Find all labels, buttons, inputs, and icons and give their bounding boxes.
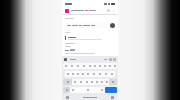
button[interactable]: Home [83,97,97,98]
button[interactable] [63,63,69,69]
button[interactable]: Symbols [63,87,70,93]
button[interactable] [85,71,91,77]
button[interactable] [80,71,85,77]
button[interactable] [112,63,117,69]
button[interactable] [107,63,112,69]
button[interactable] [103,71,109,77]
button[interactable] [109,71,115,77]
button[interactable] [92,63,97,69]
button[interactable]: Enter [105,87,117,93]
button[interactable]: Space [76,87,99,93]
button[interactable]: More options [112,9,115,12]
button[interactable] [70,71,75,77]
button[interactable] [97,71,103,77]
button[interactable] [102,63,107,69]
button[interactable] [87,63,92,69]
button[interactable]: Backspace [109,79,117,85]
button[interactable]: Shift [63,79,72,85]
button[interactable]: Back [66,96,69,99]
button[interactable] [99,79,104,85]
button[interactable] [75,63,81,69]
button[interactable] [75,71,80,77]
button[interactable]: Comma [70,87,76,93]
button[interactable]: Refresh [107,9,110,12]
button[interactable] [65,71,70,77]
button[interactable]: Keyboard settings [64,58,67,61]
button[interactable] [81,63,87,69]
button[interactable]: Account [110,23,115,28]
button[interactable]: Period [99,87,105,93]
button[interactable] [69,63,75,69]
button[interactable] [89,79,94,85]
button[interactable] [72,79,78,85]
button[interactable]: Recents [111,96,114,99]
button[interactable] [78,79,84,85]
button[interactable]: Search field [65,22,108,28]
button[interactable] [94,79,99,85]
button[interactable] [84,79,89,85]
button[interactable] [104,79,109,85]
button[interactable] [91,71,97,77]
button[interactable]: Site icon [65,9,69,13]
button[interactable] [97,63,102,69]
button[interactable]: Address bar [71,10,105,11]
